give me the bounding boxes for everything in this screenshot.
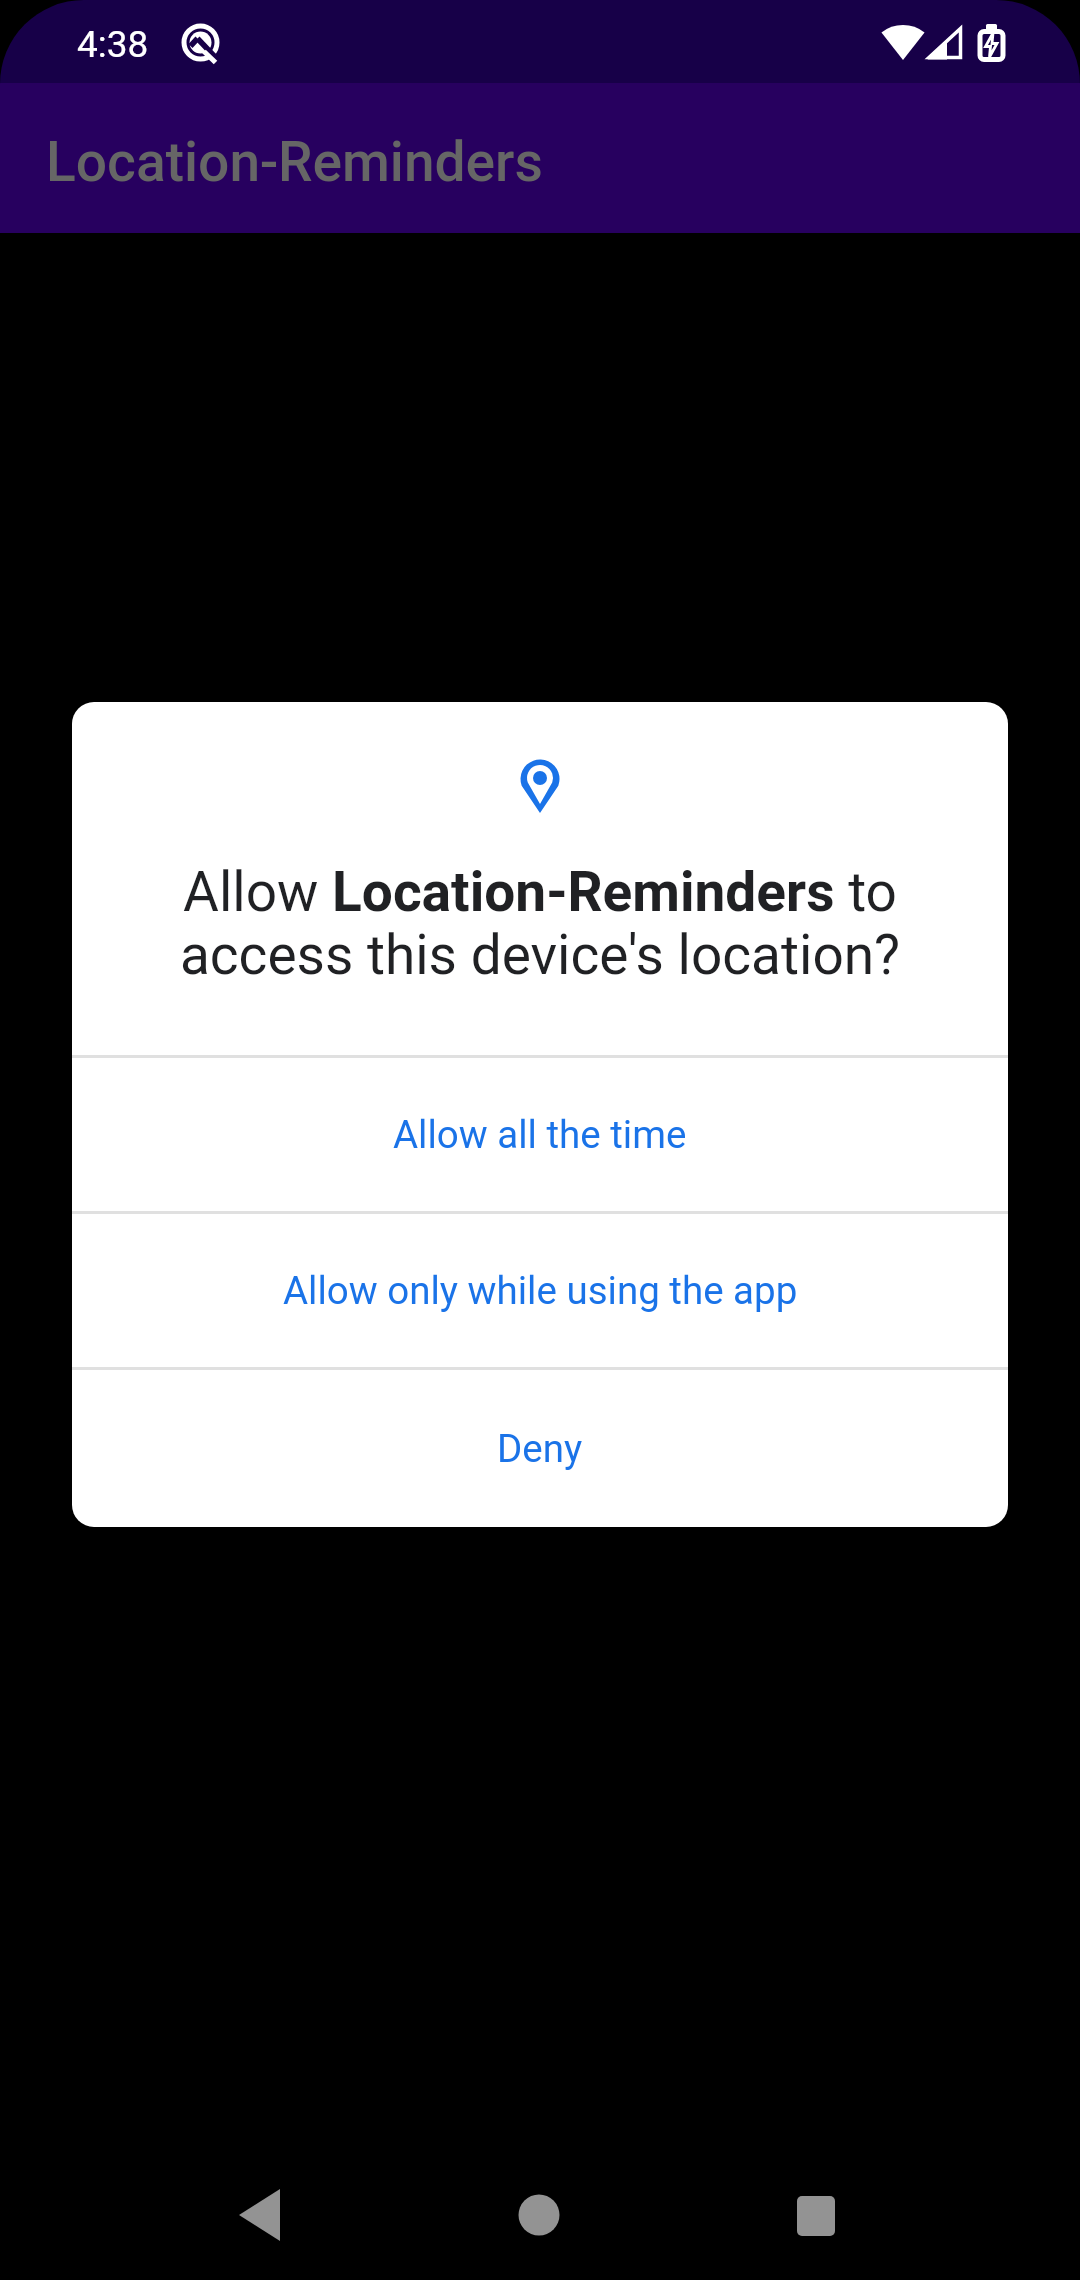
- button[interactable]: Deny: [72, 1370, 1008, 1527]
- button[interactable]: [497, 2173, 581, 2257]
- staticText: Allow all the time: [393, 1112, 687, 1157]
- staticText: Allow only while using the app: [283, 1268, 798, 1313]
- staticText: Location-Reminders: [46, 130, 543, 194]
- button[interactable]: Allow only while using the app: [72, 1214, 1008, 1367]
- staticText: Allow Location-Reminders to access this …: [72, 860, 1008, 987]
- staticText: Deny: [497, 1426, 583, 1471]
- button[interactable]: [774, 2174, 858, 2258]
- button[interactable]: [217, 2173, 301, 2257]
- staticText: 4:38: [77, 23, 149, 66]
- button[interactable]: Allow all the time: [72, 1058, 1008, 1211]
